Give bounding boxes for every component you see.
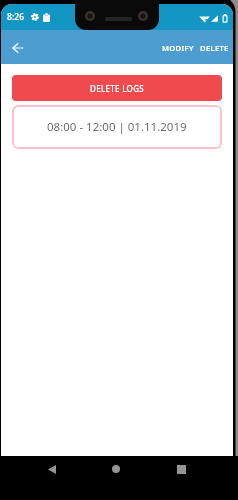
button[interactable]: Recent apps: [166, 454, 196, 484]
staticText: MODIFY: [162, 43, 194, 53]
button[interactable]: 08:00 - 12:00 | 01.11.2019: [12, 105, 222, 149]
staticText: DELETE LOGS: [90, 83, 144, 94]
staticText: 8:26: [7, 11, 25, 23]
button[interactable]: Back: [37, 454, 67, 484]
staticText: 08:00 - 12:00 | 01.11.2019: [47, 119, 187, 135]
button[interactable]: Back: [5, 36, 29, 60]
button[interactable]: DELETE: [197, 36, 233, 60]
button[interactable]: Home: [101, 454, 131, 484]
button[interactable]: DELETE LOGS: [12, 75, 222, 101]
staticText: DELETE: [200, 43, 229, 53]
button[interactable]: MODIFY: [159, 36, 197, 60]
